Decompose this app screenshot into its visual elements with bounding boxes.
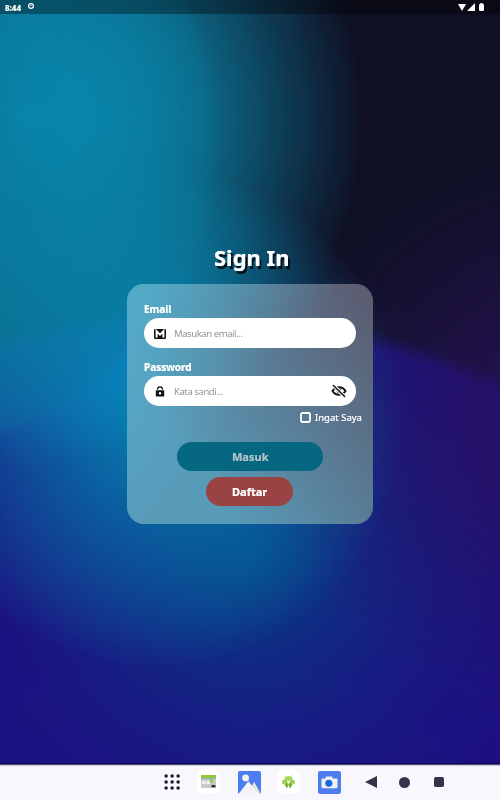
button[interactable]: Ingat Saya: [300, 411, 362, 424]
button[interactable]: Show password: [327, 379, 351, 403]
staticText: Email: [144, 302, 172, 316]
button[interactable]: Camera: [318, 771, 341, 794]
staticText: Password: [144, 360, 192, 374]
button[interactable]: Kata sandi...: [144, 376, 356, 406]
staticText: 8:44: [5, 2, 21, 13]
staticText: Masukan email...: [174, 327, 243, 340]
staticText: Sign In: [214, 242, 290, 272]
button[interactable]: App: [277, 770, 300, 793]
button[interactable]: Masuk: [177, 442, 323, 471]
button[interactable]: Masukan email...: [144, 318, 356, 348]
staticText: Sign In: [216, 245, 292, 275]
button[interactable]: App: [197, 770, 220, 793]
button[interactable]: All apps: [160, 770, 184, 794]
button[interactable]: Home: [395, 773, 413, 791]
button[interactable]: Back: [362, 773, 380, 791]
staticText: Daftar: [232, 484, 268, 499]
staticText: Ingat Saya: [315, 411, 362, 424]
button[interactable]: Gallery: [238, 771, 261, 794]
staticText: Masuk: [232, 449, 269, 464]
button[interactable]: Daftar: [206, 477, 293, 506]
button[interactable]: Recent apps: [430, 773, 448, 791]
staticText: Kata sandi...: [174, 385, 223, 398]
